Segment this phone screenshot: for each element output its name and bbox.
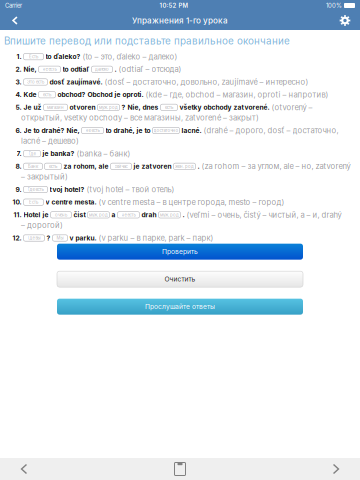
staticText: a <box>111 211 115 219</box>
button[interactable]: Previous <box>4 458 44 480</box>
staticText: Впишите перевод или подставьте правильно… <box>4 35 290 47</box>
staticText: v parku. <box>69 234 96 242</box>
staticText: v centre mesta. <box>45 198 96 206</box>
staticText: Банк <box>28 164 38 169</box>
staticText: 9. <box>15 185 21 194</box>
staticText: 3. <box>15 78 21 86</box>
staticText: to ďaleko? <box>45 53 80 61</box>
staticText: сейчас <box>114 164 127 169</box>
staticText: Очистить <box>164 275 195 283</box>
staticText: 5. <box>15 103 21 111</box>
staticText: 1. <box>16 53 21 61</box>
staticText: je zatvoren <box>133 162 171 170</box>
staticText: čist <box>73 211 85 219</box>
staticText: ? <box>46 234 50 242</box>
staticText: 7. <box>16 150 21 158</box>
staticText: Где вы <box>27 235 40 241</box>
staticText: очень <box>55 212 67 217</box>
staticText: магазин <box>47 105 64 110</box>
staticText: далеко <box>95 67 109 72</box>
staticText: Где <box>28 151 35 156</box>
button[interactable]: Очистить <box>57 271 303 287</box>
staticText: (veľmi – очень, čistý – чистый, a – и, d… <box>186 210 341 219</box>
staticText: lacné – дешево) <box>21 136 79 146</box>
staticText: (tvoj hotel – твой отель) <box>86 185 174 194</box>
staticText: (kde – где, obchod – магазин, oproti – н… <box>145 90 328 99</box>
staticText: to odtiaľ <box>62 65 89 73</box>
staticText: (dosť – достаточно, довольно, zaujímavé … <box>104 77 308 87</box>
staticText: tvoj hotel? <box>49 185 84 194</box>
staticText: есть <box>43 92 51 97</box>
staticText: Есть <box>29 200 38 205</box>
staticText: . <box>197 162 199 170</box>
staticText: есть <box>49 164 57 169</box>
staticText: drah <box>141 211 156 219</box>
staticText: . <box>182 211 184 219</box>
staticText: 6. <box>15 126 21 135</box>
staticText: 100% <box>326 2 342 9</box>
staticText: – дорогой) <box>21 221 63 230</box>
button[interactable]: Прослушайте ответы <box>57 299 303 315</box>
staticText: муж. род <box>89 212 108 217</box>
staticText: (v centre mesta – в центре города, mesto… <box>98 197 284 207</box>
button[interactable]: Проверить <box>57 244 303 260</box>
staticText: Это есть <box>27 79 44 85</box>
staticText: (za rohom – за углом, ale – но, zatvoren… <box>201 162 350 171</box>
staticText: je banka? <box>42 150 74 158</box>
button[interactable]: Next <box>316 458 356 480</box>
button[interactable]: Notes <box>160 458 200 480</box>
staticText: Прослушайте ответы <box>145 303 215 311</box>
staticText: otvoren <box>69 103 95 111</box>
button[interactable]: Settings <box>330 11 360 30</box>
staticText: (odtiaľ – отсюда) <box>118 65 181 74</box>
staticText: Где есть <box>27 187 43 192</box>
staticText: 4. <box>15 91 21 99</box>
staticText: не есть <box>85 128 99 133</box>
staticText: (otvorený – <box>271 103 312 112</box>
staticText: открытый, všetky obchody – все магазины,… <box>21 113 259 122</box>
staticText: obchod? Obchod je oproti. <box>57 91 143 99</box>
staticText: 11. <box>13 211 21 219</box>
staticText: 8. <box>15 162 21 170</box>
staticText: všetky obchody zatvorené. <box>179 103 269 111</box>
staticText: Je už <box>23 103 41 111</box>
staticText: Carrier <box>5 2 22 9</box>
staticText: . <box>114 65 116 73</box>
staticText: Nie, <box>23 65 36 73</box>
staticText: Проверить <box>162 248 198 256</box>
staticText: 10:52 PM <box>159 2 188 9</box>
staticText: – закрытый) <box>21 172 68 181</box>
staticText: ? Nie, dnes <box>121 103 158 111</box>
staticText: (v parku – в парке, park – парк) <box>98 233 213 243</box>
staticText: жен. род <box>175 164 194 169</box>
staticText: dosť zaujímavé. <box>49 78 102 86</box>
staticText: достаточно <box>153 128 178 133</box>
staticText: Есть <box>29 54 38 59</box>
staticText: Мы <box>56 235 63 241</box>
staticText: муж. род <box>160 212 179 217</box>
staticText: (banka – банк) <box>76 149 130 158</box>
staticText: есть <box>165 105 173 110</box>
staticText: не есть <box>42 67 56 72</box>
staticText: lacné. <box>181 126 201 135</box>
staticText: Je to drahé? Nie, <box>23 126 79 135</box>
staticText: муж. род <box>99 105 118 110</box>
staticText: (drahé – дорого, dosť – достаточно, <box>203 126 338 135</box>
staticText: 2. <box>15 65 21 73</box>
staticText: Hotel je <box>23 211 48 219</box>
staticText: Kde <box>23 91 36 99</box>
button[interactable]: Back <box>0 11 30 30</box>
staticText: не есть <box>121 212 135 217</box>
staticText: (to – это, ďaleko – далеко) <box>82 52 177 61</box>
staticText: 10. <box>12 198 21 206</box>
staticText: to drahé, je to <box>105 126 150 135</box>
staticText: 12. <box>12 234 21 242</box>
staticText: Упражнения 1-го урока <box>132 16 228 25</box>
staticText: za rohom, ale <box>63 162 108 170</box>
